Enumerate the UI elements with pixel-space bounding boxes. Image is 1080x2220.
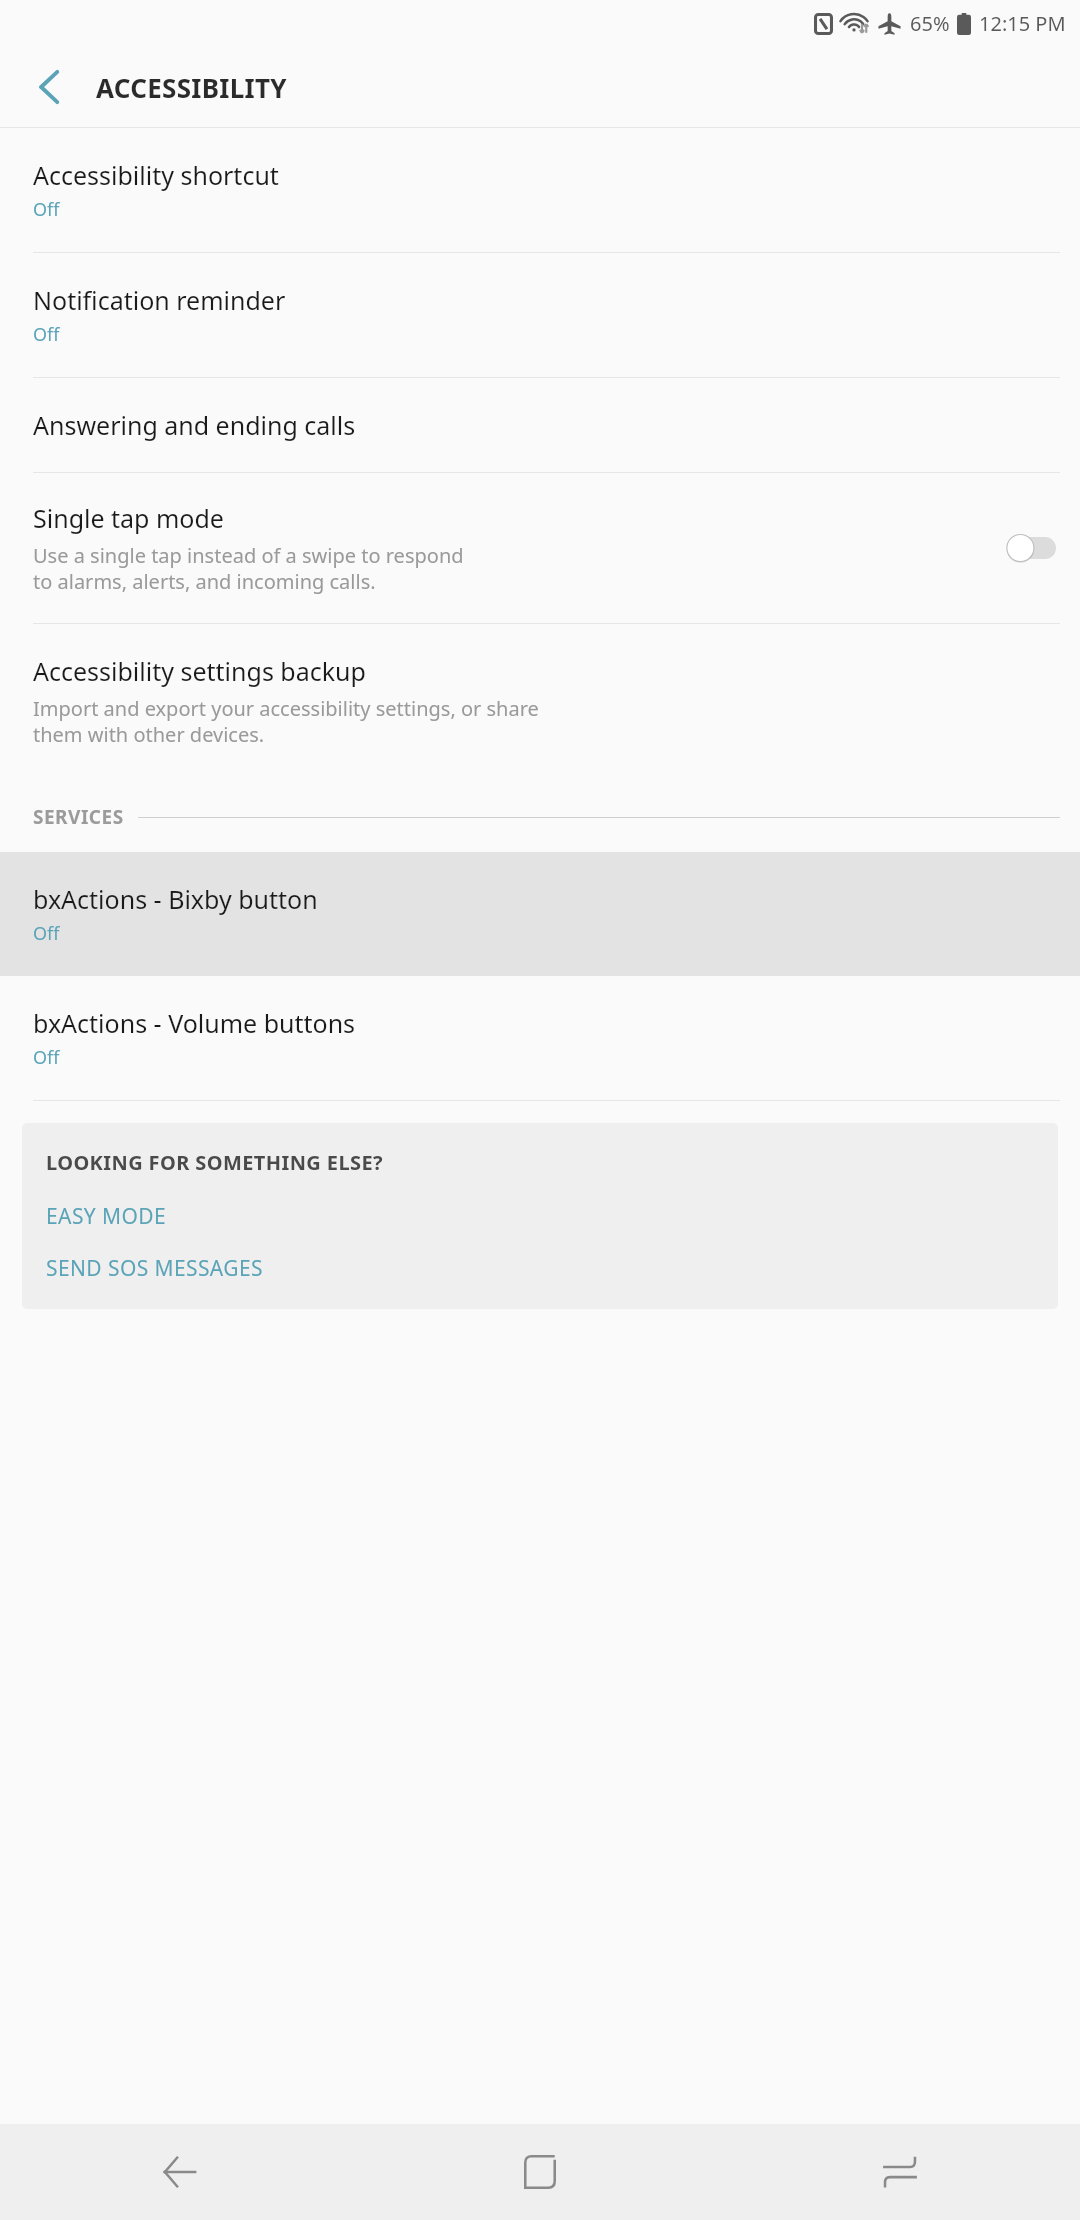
staticText: Answering and ending calls (33, 408, 356, 442)
staticText: Accessibility shortcut (33, 158, 279, 192)
staticText: ACCESSIBILITY (96, 70, 287, 105)
staticText: LOOKING FOR SOMETHING ELSE? (46, 1149, 383, 1176)
staticText: SERVICES (33, 804, 124, 830)
staticText: Off (33, 921, 60, 946)
staticText: Single tap mode (33, 501, 224, 535)
staticText: Notification reminder (33, 283, 286, 317)
button[interactable]: bxActions - Volume buttons (0, 976, 1080, 1100)
staticText: EASY MODE (46, 1202, 167, 1231)
button[interactable]: Accessibility shortcut (0, 128, 1080, 252)
staticText: Use a single tap instead of a swipe to r… (33, 542, 464, 595)
staticText: 12:15 PM (979, 10, 1066, 37)
staticText: bxActions - Volume buttons (33, 1006, 356, 1040)
staticText: bxActions - Bixby button (33, 882, 318, 916)
button[interactable]: Accessibility settings backup (0, 624, 1080, 778)
staticText: SEND SOS MESSAGES (46, 1254, 263, 1283)
button[interactable]: Back (18, 55, 82, 119)
button[interactable]: Back (0, 2124, 360, 2220)
button[interactable]: Answering and ending calls (0, 378, 1080, 472)
button[interactable]: EASY MODE (46, 1202, 167, 1231)
button[interactable]: Single tap mode (0, 473, 1080, 623)
staticText: Off (33, 197, 60, 222)
staticText: Off (33, 1045, 60, 1070)
button[interactable]: Home (360, 2124, 720, 2220)
button[interactable]: Notification reminder (0, 253, 1080, 377)
staticText: 65% (910, 10, 950, 37)
staticText: Accessibility settings backup (33, 654, 366, 688)
button[interactable]: bxActions - Bixby button (0, 852, 1080, 976)
staticText: Off (33, 322, 60, 347)
staticText: Import and export your accessibility set… (33, 695, 539, 748)
button[interactable]: Recents (720, 2124, 1080, 2220)
button[interactable]: SEND SOS MESSAGES (46, 1254, 263, 1283)
button[interactable]: Single tap mode toggle (1006, 533, 1056, 563)
